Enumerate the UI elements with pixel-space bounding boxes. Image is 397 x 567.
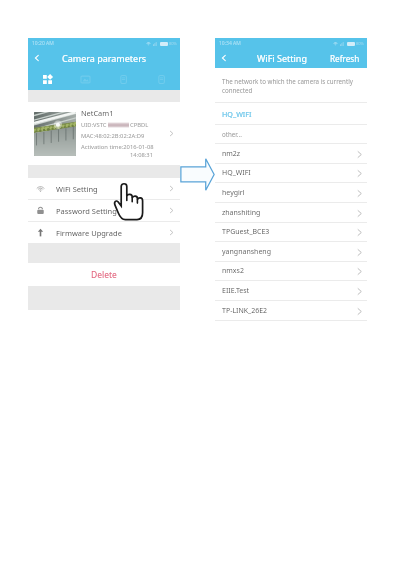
staticText: 10:20 AM bbox=[32, 40, 54, 47]
button[interactable]: HQ_WIFI bbox=[215, 103, 367, 124]
staticText: MAC:48:02:2B:02:2A:D9 bbox=[81, 132, 145, 140]
staticText: TP-LINK_26E2 bbox=[222, 306, 355, 316]
staticText: HQ_WIFI bbox=[222, 109, 252, 119]
button[interactable]: Device list bbox=[28, 68, 66, 90]
button[interactable]: Back bbox=[215, 48, 233, 68]
button[interactable]: zhanshiting bbox=[215, 203, 367, 223]
staticText: 80% bbox=[356, 41, 364, 46]
staticText: WiFi Setting bbox=[56, 184, 168, 194]
button[interactable]: Refresh bbox=[327, 48, 367, 68]
staticText: Firmware Upgrade bbox=[56, 228, 168, 238]
button[interactable]: WiFi Setting bbox=[28, 178, 180, 199]
staticText: heygirl bbox=[222, 188, 355, 198]
staticText: CPBDL bbox=[130, 121, 149, 129]
button[interactable]: EIIE.Test bbox=[215, 281, 367, 301]
button[interactable]: Password Setting bbox=[28, 200, 180, 221]
staticText: nm2z bbox=[222, 149, 355, 159]
button[interactable]: NetCam1 bbox=[28, 102, 180, 165]
staticText: Password Setting bbox=[56, 206, 168, 216]
staticText: 14:08:31 bbox=[81, 151, 153, 159]
staticText: Delete bbox=[91, 269, 117, 281]
button[interactable]: TP-LINK_26E2 bbox=[215, 301, 367, 321]
staticText: zhanshiting bbox=[222, 208, 355, 218]
staticText: Refresh bbox=[330, 53, 360, 64]
staticText: Camera parameters bbox=[62, 52, 147, 64]
staticText: nmxs2 bbox=[222, 266, 355, 276]
button[interactable]: Firmware Upgrade bbox=[28, 222, 180, 243]
button[interactable]: Recordings bbox=[104, 68, 142, 90]
staticText: EIIE.Test bbox=[222, 286, 355, 296]
staticText: The network to which the camera is curre… bbox=[222, 77, 363, 95]
button[interactable]: yangnansheng bbox=[215, 242, 367, 262]
button[interactable]: nmxs2 bbox=[215, 261, 367, 281]
staticText: HQ_WIFI bbox=[222, 168, 355, 178]
staticText: yangnansheng bbox=[222, 247, 355, 257]
button[interactable]: heygirl bbox=[215, 183, 367, 203]
button[interactable]: Delete bbox=[28, 263, 180, 286]
staticText: NetCam1 bbox=[81, 108, 114, 118]
staticText: WiFi Setting bbox=[257, 52, 307, 64]
staticText: Activation time:2016-01-08 bbox=[81, 143, 154, 151]
button[interactable]: More bbox=[142, 68, 180, 90]
button[interactable]: nm2z bbox=[215, 144, 367, 164]
staticText: TPGuest_BCE3 bbox=[222, 227, 355, 237]
button[interactable]: Back bbox=[28, 48, 46, 68]
staticText: 80% bbox=[169, 41, 177, 46]
staticText: 10:34 AM bbox=[219, 40, 241, 47]
button[interactable]: Snapshots bbox=[66, 68, 104, 90]
button[interactable]: TPGuest_BCE3 bbox=[215, 222, 367, 242]
button[interactable]: HQ_WIFI bbox=[215, 163, 367, 183]
staticText: UID:VSTC bbox=[81, 121, 107, 129]
staticText: other... bbox=[222, 130, 242, 138]
